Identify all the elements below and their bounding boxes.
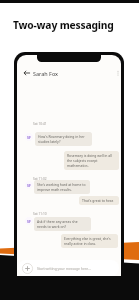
staticText: How's Rosemary doing in her studies late…	[38, 134, 89, 144]
button[interactable]: More options	[114, 69, 121, 77]
staticText: Start writing your message here...	[37, 266, 91, 271]
button[interactable]: Ask if there any areas she needs to work…	[34, 217, 91, 231]
button[interactable]: Everything else is great, she's really a…	[61, 234, 118, 248]
staticText: Sat 11:10	[33, 212, 47, 216]
staticText: She's working hard at home to improve ma…	[37, 182, 87, 192]
button[interactable]: Add attachment	[18, 260, 119, 276]
staticText: Sat 11:02	[33, 177, 47, 181]
staticText: That's great to hear.	[82, 198, 114, 203]
staticText: SF	[27, 183, 31, 188]
staticText: Everything else is great, she's really a…	[64, 236, 115, 246]
button[interactable]: Back	[23, 69, 31, 77]
staticText: Sat 10:41	[33, 122, 47, 126]
button[interactable]: Rosemary is doing well in all the subjec…	[64, 151, 119, 170]
button[interactable]: That's great to hear.	[79, 196, 119, 205]
staticText: Ask if there any areas she needs to work…	[37, 219, 88, 229]
other: Add attachment	[22, 263, 33, 274]
staticText: SF	[27, 135, 31, 140]
staticText: Sarah Fox	[33, 70, 59, 77]
staticText: Rosemary is doing well in all the subjec…	[67, 153, 116, 168]
button[interactable]: How's Rosemary doing in her studies late…	[35, 132, 92, 146]
staticText: Two-way messaging	[13, 18, 114, 32]
staticText: SF	[27, 219, 31, 224]
button[interactable]: She's working hard at home to improve ma…	[34, 180, 90, 194]
